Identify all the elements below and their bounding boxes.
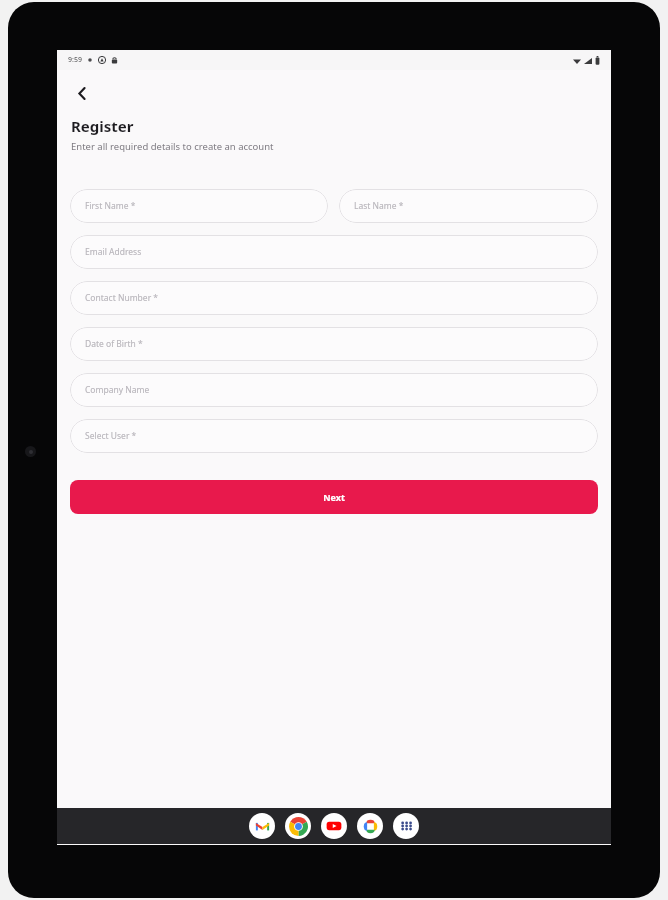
button[interactable]: Email Address bbox=[70, 235, 598, 269]
button[interactable]: Back bbox=[65, 76, 99, 110]
button[interactable]: Contact Number * bbox=[70, 281, 598, 315]
button[interactable]: First Name * bbox=[70, 189, 328, 223]
button[interactable]: Date of Birth * bbox=[70, 327, 598, 361]
button[interactable]: Gmail bbox=[249, 813, 275, 839]
staticText: Register bbox=[71, 116, 134, 136]
button[interactable]: Photos bbox=[357, 813, 383, 839]
button[interactable]: Chrome bbox=[285, 813, 311, 839]
button[interactable]: Company Name bbox=[70, 373, 598, 407]
staticText: Last Name * bbox=[354, 200, 404, 212]
staticText: 9:59 bbox=[68, 55, 82, 65]
button[interactable]: All apps bbox=[393, 813, 419, 839]
staticText: Enter all required details to create an … bbox=[71, 140, 274, 153]
staticText: Contact Number * bbox=[85, 292, 159, 304]
staticText: Company Name bbox=[85, 384, 150, 396]
staticText: First Name * bbox=[85, 200, 136, 212]
button[interactable]: YouTube bbox=[321, 813, 347, 839]
staticText: Date of Birth * bbox=[85, 338, 143, 350]
staticText: Next bbox=[323, 491, 345, 503]
button[interactable]: Next bbox=[70, 480, 598, 514]
button[interactable]: Select User * bbox=[70, 419, 598, 453]
staticText: Select User * bbox=[85, 430, 137, 442]
button[interactable]: Last Name * bbox=[339, 189, 598, 223]
staticText: Email Address bbox=[85, 246, 142, 258]
